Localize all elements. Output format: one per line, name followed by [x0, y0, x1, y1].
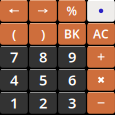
button[interactable]: 3: [58, 92, 86, 114]
staticText: 6: [68, 70, 76, 90]
staticText: 7: [10, 47, 18, 67]
staticText: 2: [39, 93, 47, 113]
button[interactable]: Subtract: [87, 92, 115, 114]
staticText: 3: [68, 93, 76, 113]
button[interactable]: (: [0, 23, 28, 45]
staticText: ): [41, 25, 45, 43]
button[interactable]: 9: [58, 46, 86, 68]
staticText: BK: [64, 26, 80, 42]
button[interactable]: 1: [0, 92, 28, 114]
button[interactable]: 8: [29, 46, 57, 68]
button[interactable]: BK: [58, 23, 86, 45]
button[interactable]: Move cursor right: [29, 0, 57, 22]
button[interactable]: Decimal point: [87, 0, 115, 22]
button[interactable]: Move cursor left: [0, 0, 28, 22]
button[interactable]: 5: [29, 69, 57, 91]
staticText: 9: [68, 47, 76, 67]
staticText: %: [66, 3, 77, 19]
staticText: 1: [10, 93, 18, 113]
staticText: 4: [10, 70, 18, 90]
staticText: 5: [39, 70, 47, 90]
button[interactable]: 7: [0, 46, 28, 68]
button[interactable]: Add: [87, 46, 115, 68]
staticText: 8: [39, 47, 47, 67]
button[interactable]: 6: [58, 69, 86, 91]
staticText: AC: [93, 26, 109, 42]
button[interactable]: Multiply: [87, 69, 115, 91]
button[interactable]: %: [58, 0, 86, 22]
button[interactable]: 2: [29, 92, 57, 114]
button[interactable]: AC: [87, 23, 115, 45]
staticText: (: [12, 25, 16, 43]
button[interactable]: ): [29, 23, 57, 45]
button[interactable]: 4: [0, 69, 28, 91]
